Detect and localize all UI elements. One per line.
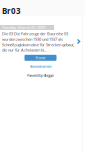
staticText: Powered by Blogger. (27, 73, 54, 78)
staticText: View web version (30, 64, 51, 69)
staticText: Br03 (2, 6, 21, 16)
staticText: Home (35, 55, 45, 60)
staticText: Die 03 Die Fahrzeuge der Baureihe 03 wur… (2, 31, 74, 53)
button[interactable]: Next post (75, 37, 84, 46)
staticText: Tuesday, March 27, 2009 (2, 25, 45, 30)
button[interactable]: Home (24, 55, 56, 61)
button[interactable]: View web version (30, 64, 51, 69)
